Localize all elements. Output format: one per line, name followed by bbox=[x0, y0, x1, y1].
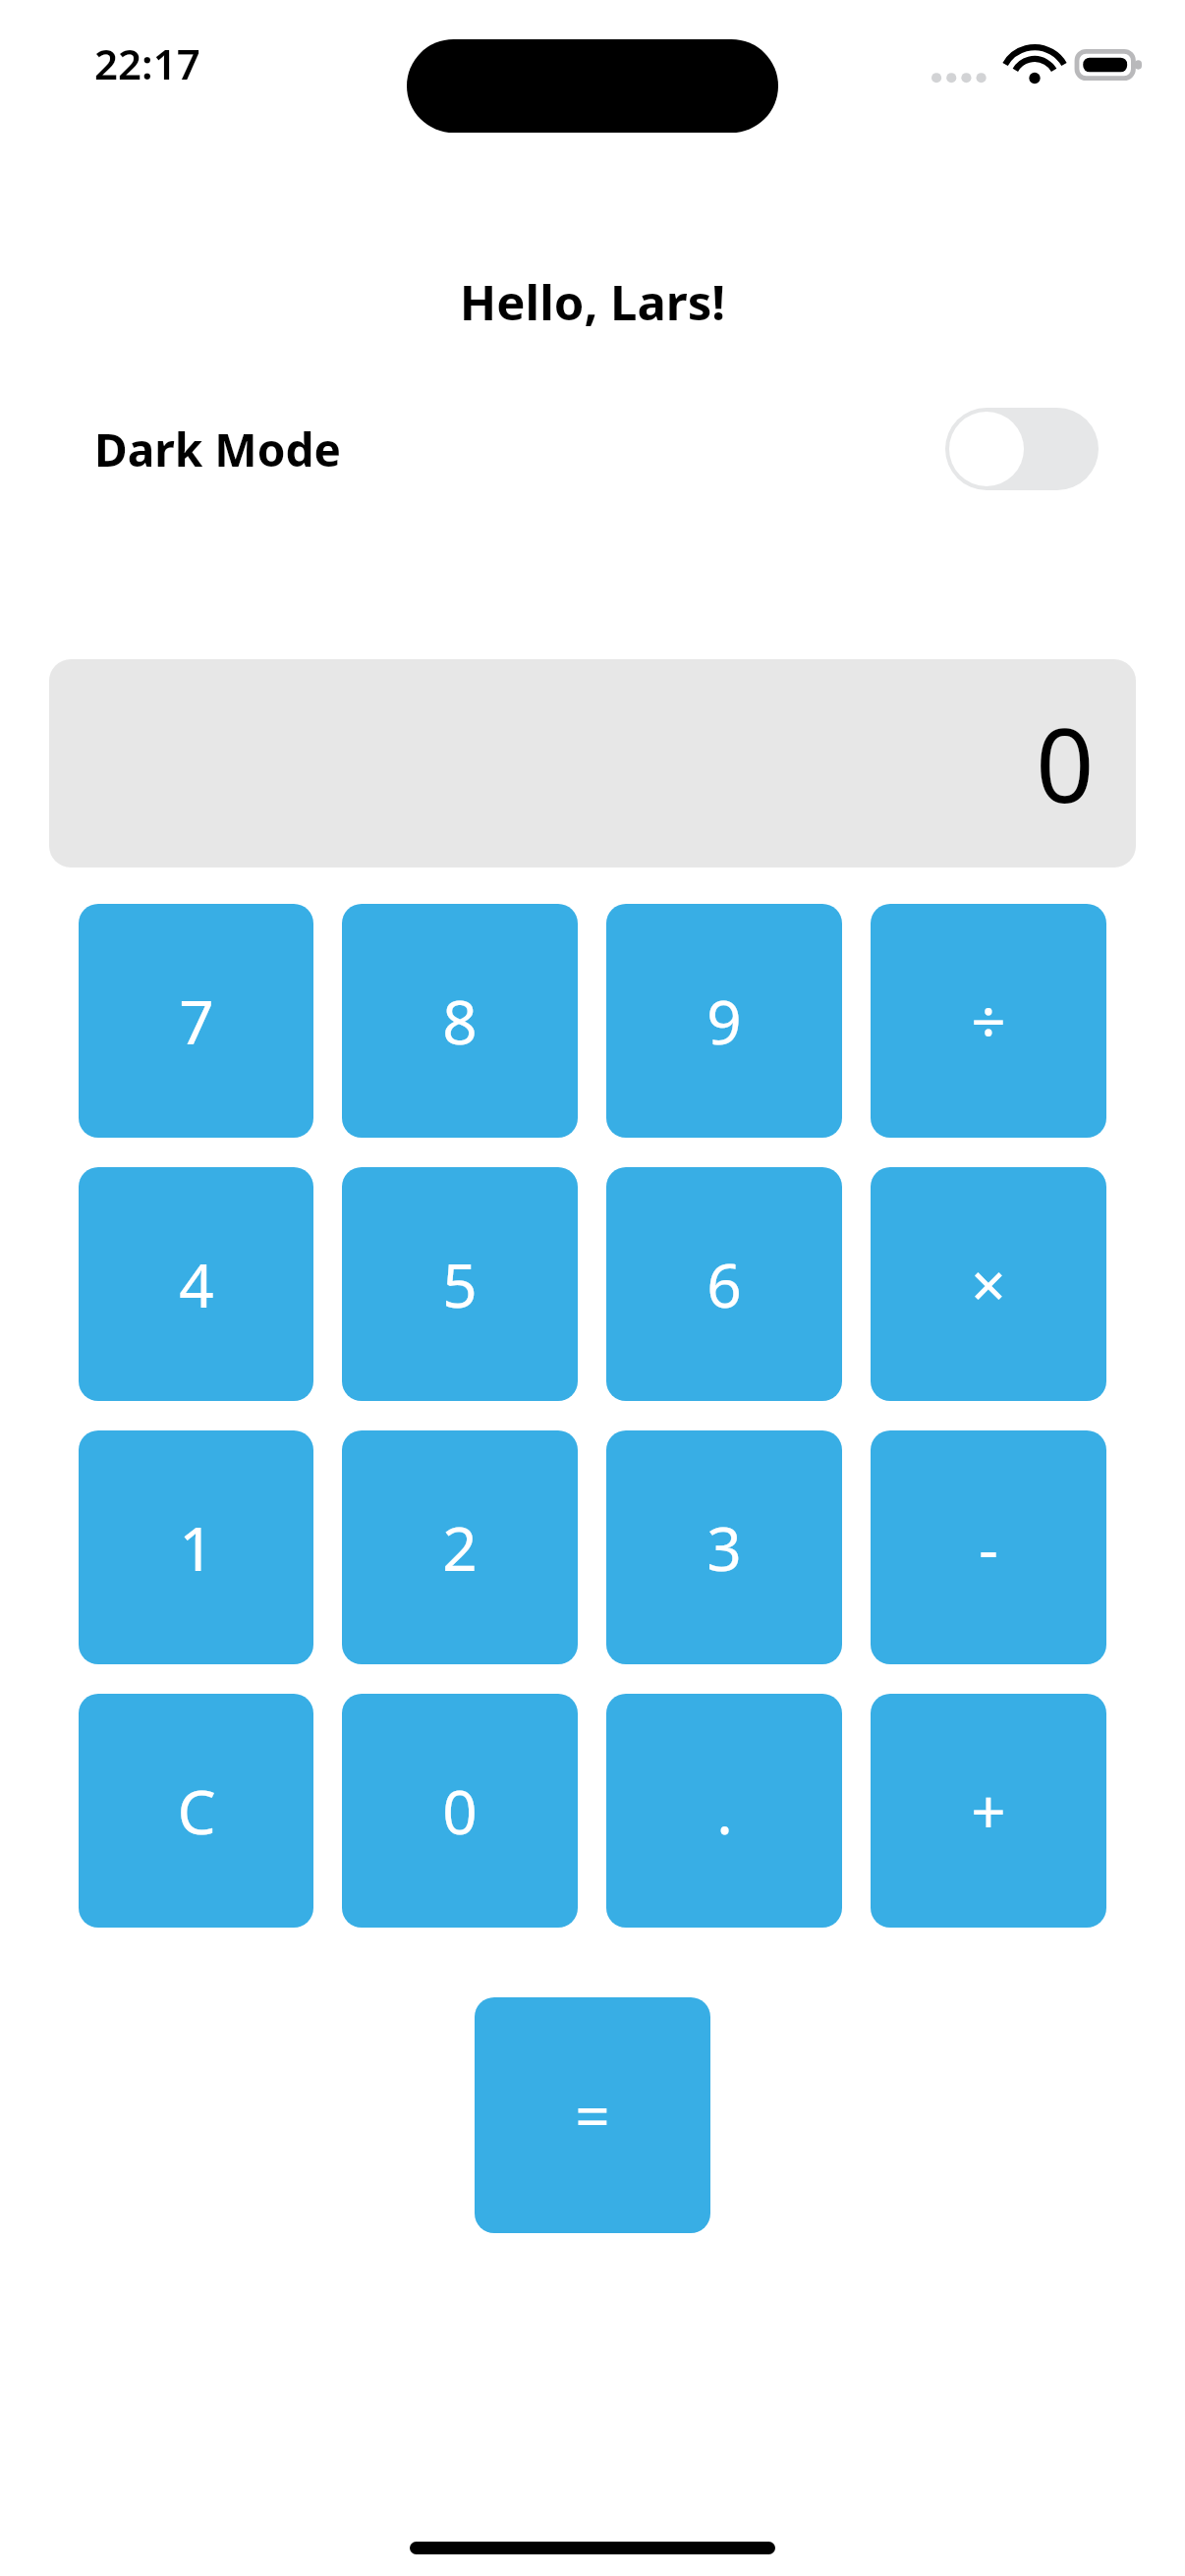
staticText: + bbox=[971, 1769, 1006, 1852]
button[interactable]: 7 bbox=[79, 904, 313, 1138]
staticText: 6 bbox=[706, 1243, 742, 1325]
button[interactable]: + bbox=[871, 1694, 1106, 1928]
button[interactable]: 8 bbox=[342, 904, 578, 1138]
staticText: 8 bbox=[442, 980, 478, 1062]
staticText: 7 bbox=[179, 980, 214, 1062]
button[interactable]: . bbox=[606, 1694, 842, 1928]
staticText: 1 bbox=[179, 1506, 214, 1589]
button[interactable]: 9 bbox=[606, 904, 842, 1138]
button[interactable]: = bbox=[475, 1997, 710, 2233]
button[interactable]: - bbox=[871, 1430, 1106, 1664]
button[interactable]: ÷ bbox=[871, 904, 1106, 1138]
staticText: C bbox=[177, 1769, 216, 1852]
staticText: 22:17 bbox=[94, 35, 200, 91]
staticText: × bbox=[971, 1243, 1006, 1325]
button[interactable]: × bbox=[871, 1167, 1106, 1401]
staticText: 3 bbox=[706, 1506, 742, 1589]
button[interactable]: 6 bbox=[606, 1167, 842, 1401]
button[interactable]: 5 bbox=[342, 1167, 578, 1401]
staticText: 9 bbox=[706, 980, 742, 1062]
button[interactable]: C bbox=[79, 1694, 313, 1928]
staticText: 2 bbox=[442, 1506, 478, 1589]
button[interactable]: 2 bbox=[342, 1430, 578, 1664]
button[interactable]: 0 bbox=[49, 659, 1136, 868]
staticText: Dark Mode bbox=[94, 419, 341, 480]
staticText: 0 bbox=[1036, 694, 1095, 833]
button[interactable]: 1 bbox=[79, 1430, 313, 1664]
staticText: 0 bbox=[442, 1769, 478, 1852]
button[interactable]: Dark Mode toggle bbox=[945, 408, 1099, 490]
staticText: 5 bbox=[442, 1243, 478, 1325]
staticText: - bbox=[979, 1506, 998, 1589]
staticText: 4 bbox=[179, 1243, 214, 1325]
staticText: . bbox=[716, 1769, 733, 1852]
staticText: = bbox=[575, 2074, 610, 2156]
button[interactable]: 3 bbox=[606, 1430, 842, 1664]
button[interactable]: 0 bbox=[342, 1694, 578, 1928]
staticText: ÷ bbox=[971, 980, 1006, 1062]
staticText: Hello, Lars! bbox=[0, 269, 1185, 335]
button[interactable]: 4 bbox=[79, 1167, 313, 1401]
